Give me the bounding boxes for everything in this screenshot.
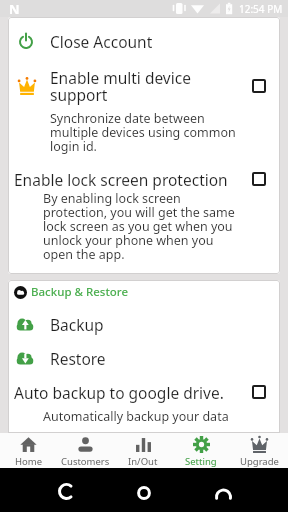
staticText: Home (15, 455, 43, 468)
button[interactable]: Setting (172, 433, 230, 468)
staticText: Setting (185, 455, 217, 468)
staticText: By enabling lock screen protection, you … (43, 190, 235, 263)
button[interactable]: Upgrade (230, 433, 288, 468)
staticText: Close Account (50, 31, 153, 52)
button[interactable] (54, 479, 78, 503)
button[interactable]: Enable lock screen protection (8, 168, 280, 190)
staticText: Restore (50, 348, 106, 369)
button[interactable] (252, 385, 266, 399)
staticText: Synchronize date between multiple device… (50, 110, 236, 155)
button[interactable] (132, 481, 156, 505)
staticText: 12:54 PM (239, 2, 283, 16)
button[interactable]: Home (0, 433, 57, 468)
button[interactable] (252, 79, 266, 93)
staticText: Customers (61, 455, 110, 468)
button[interactable]: Auto backup to google drive. (8, 376, 280, 408)
staticText: Automatically backup your data (43, 408, 229, 425)
staticText: Upgrade (240, 455, 279, 468)
button[interactable]: Close Account (8, 19, 280, 63)
staticText: Auto backup to google drive. (14, 382, 252, 403)
staticText: N (9, 0, 20, 17)
button[interactable]: Enable multi device support (8, 65, 280, 107)
button[interactable] (211, 484, 235, 508)
button[interactable]: Restore (8, 341, 280, 376)
staticText: Enable multi device support (50, 67, 252, 106)
button[interactable]: In/Out (114, 433, 172, 468)
button[interactable]: Backup (8, 308, 280, 341)
button[interactable]: Backup & Restore (8, 280, 280, 304)
button[interactable]: Customers (57, 433, 114, 468)
staticText: Backup (50, 314, 104, 335)
staticText: Backup & Restore (31, 284, 129, 300)
staticText: Enable lock screen protection (14, 169, 252, 190)
staticText: In/Out (128, 455, 158, 468)
button[interactable] (252, 172, 266, 186)
